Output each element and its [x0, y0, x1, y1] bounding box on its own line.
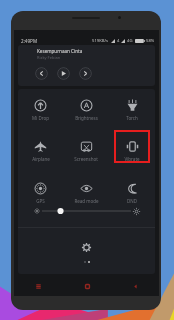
staticText: Brightness: [75, 115, 98, 121]
button[interactable]: Vibrate: [109, 129, 155, 163]
staticText: 58%: [146, 38, 155, 44]
button[interactable]: Play: [57, 67, 70, 80]
staticText: Torch: [126, 115, 138, 121]
button[interactable]: Mi Drop: [18, 89, 63, 122]
button[interactable]: Airplane: [18, 129, 63, 163]
button[interactable]: Next: [79, 67, 92, 80]
staticText: GPS: [36, 198, 45, 204]
button[interactable]: Brightness: [63, 89, 109, 122]
button[interactable]: Settings: [80, 241, 93, 254]
staticText: 4G: [127, 38, 133, 44]
staticText: DND: [127, 198, 137, 204]
staticText: Rizky Febian: [37, 55, 61, 60]
button[interactable]: Recents: [14, 276, 63, 296]
button[interactable]: Previous: [35, 67, 48, 80]
staticText: Vibrate: [124, 156, 140, 162]
staticText: Kesempurnaan Cinta: [37, 48, 83, 54]
staticText: 2:49PM: [21, 38, 38, 44]
button[interactable]: Screenshot: [63, 129, 109, 163]
staticText: Airplane: [32, 156, 50, 162]
button[interactable]: Home: [63, 276, 111, 296]
button[interactable]: Back: [111, 276, 159, 296]
button[interactable]: Torch: [109, 89, 155, 122]
staticText: 519KB/s: [92, 38, 109, 44]
staticText: Read mode: [74, 198, 99, 204]
staticText: Mi Drop: [32, 115, 49, 121]
staticText: 4: [117, 38, 120, 44]
button[interactable]: DND: [109, 171, 155, 205]
staticText: Screenshot: [74, 156, 98, 162]
button[interactable]: Read mode: [63, 171, 109, 205]
button[interactable]: GPS: [18, 171, 63, 205]
